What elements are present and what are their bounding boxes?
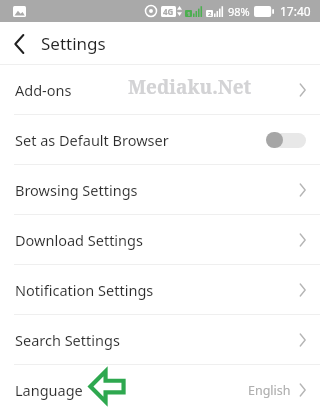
staticText: Add-ons [15,80,72,100]
staticText: 2 [208,10,212,17]
staticText: Language [15,380,83,400]
staticText: Settings [41,32,106,55]
staticText: Browsing Settings [15,180,138,200]
button[interactable]: Set as Default Browser [0,115,320,165]
button[interactable]: Add-ons [0,65,320,115]
staticText: Set as Default Browser [15,130,169,150]
button[interactable]: Browsing Settings [0,165,320,215]
staticText: Search Settings [15,330,120,350]
staticText: 98% [228,4,250,19]
staticText: 1 [187,10,191,17]
button[interactable]: Download Settings [0,215,320,265]
staticText: English [248,382,291,399]
staticText: Mediaku.Net [128,74,252,100]
staticText: 17:40 [280,3,311,19]
staticText: 4G [163,6,174,17]
staticText: Notification Settings [15,280,154,300]
staticText: Download Settings [15,230,143,250]
button[interactable]: Language [0,365,320,415]
button[interactable]: Back [0,29,33,59]
button[interactable]: Search Settings [0,315,320,365]
button[interactable]: Notification Settings [0,265,320,315]
